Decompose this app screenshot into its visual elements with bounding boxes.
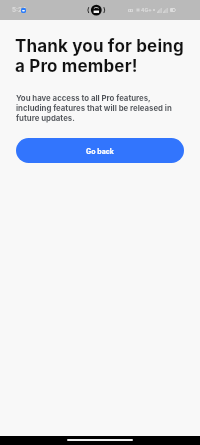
staticText: Go back — [86, 147, 114, 155]
staticText: Thank you for being a Pro member! — [15, 36, 192, 76]
staticText: 4G+ — [141, 7, 152, 13]
staticText: You have access to all Pro features, inc… — [16, 93, 184, 123]
other: Home gesture bar — [0, 436, 200, 445]
button[interactable]: Go back — [16, 138, 184, 163]
staticText: 5:24 — [12, 6, 27, 14]
